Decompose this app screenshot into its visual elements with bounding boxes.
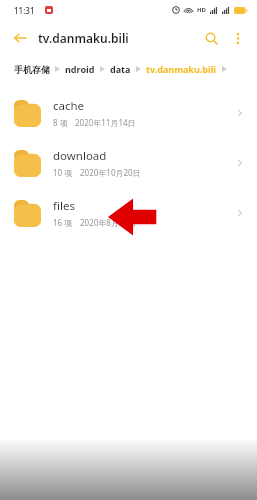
staticText: 10 项 bbox=[53, 167, 73, 178]
button[interactable]: files bbox=[0, 188, 257, 238]
staticText: 16 项 bbox=[53, 217, 73, 228]
button[interactable]: Back bbox=[6, 24, 34, 52]
staticText: files bbox=[53, 198, 75, 214]
staticText: 8 项 bbox=[53, 117, 68, 128]
staticText: 2020年8月19日 bbox=[80, 217, 137, 228]
staticText: download bbox=[53, 148, 107, 164]
button[interactable]: 手机存储 bbox=[14, 64, 50, 75]
staticText: 2020年11月14日 bbox=[75, 117, 136, 128]
staticText: cache bbox=[53, 98, 85, 114]
staticText: 11:31 bbox=[14, 5, 35, 16]
staticText: 2020年10月20日 bbox=[80, 167, 141, 178]
button[interactable]: cache bbox=[0, 88, 257, 138]
button[interactable]: Search bbox=[197, 24, 225, 52]
button[interactable]: More options bbox=[225, 25, 251, 51]
button[interactable]: ndroid bbox=[65, 63, 95, 75]
button[interactable]: tv.danmaku.bili bbox=[146, 63, 217, 75]
staticText: HD bbox=[197, 6, 206, 14]
button[interactable]: download bbox=[0, 138, 257, 188]
button[interactable]: data bbox=[110, 63, 131, 75]
staticText: tv.danmaku.bili bbox=[38, 30, 129, 46]
